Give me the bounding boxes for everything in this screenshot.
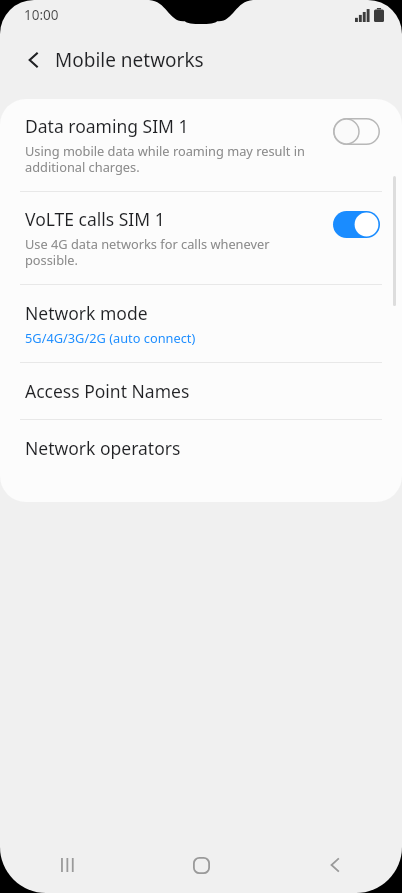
staticText: Using mobile data while roaming may resu… <box>25 142 305 176</box>
staticText: Access Point Names <box>25 379 190 403</box>
staticText: Network mode <box>25 301 148 325</box>
staticText: 10:00 <box>24 6 59 24</box>
button[interactable]: Network mode <box>0 285 402 362</box>
staticText: Mobile networks <box>55 47 204 73</box>
button[interactable]: VoLTE calls SIM 1 <box>0 192 402 284</box>
staticText: Use 4G data networks for calls whenever … <box>25 235 270 269</box>
button[interactable]: Off <box>333 118 380 145</box>
button[interactable]: Access Point Names <box>0 363 402 419</box>
button[interactable]: Home <box>134 837 268 893</box>
staticText: Data roaming SIM 1 <box>25 114 189 138</box>
button[interactable]: Back <box>14 40 54 80</box>
staticText: Network operators <box>25 436 181 460</box>
button[interactable]: Network operators <box>0 420 402 476</box>
button[interactable]: On <box>333 211 380 238</box>
staticText: VoLTE calls SIM 1 <box>25 207 165 231</box>
button[interactable]: Back <box>268 837 402 893</box>
button[interactable]: Recents <box>0 837 134 893</box>
button[interactable]: Data roaming SIM 1 <box>0 99 402 191</box>
staticText: 5G/4G/3G/2G (auto connect) <box>25 329 196 346</box>
